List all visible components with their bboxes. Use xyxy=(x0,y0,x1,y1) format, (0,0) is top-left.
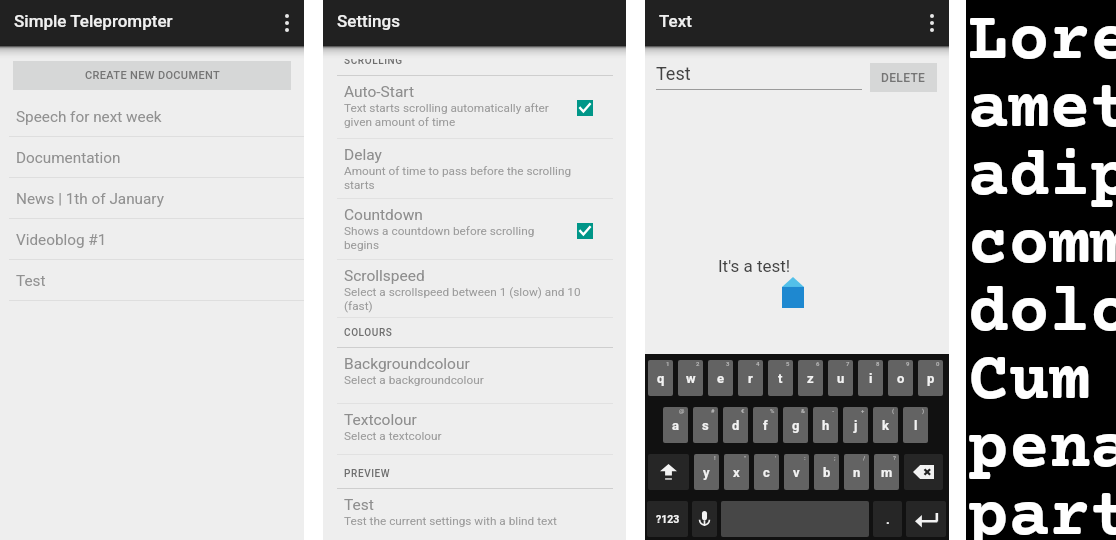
staticText: q xyxy=(657,371,665,386)
button[interactable]: Voice input xyxy=(692,501,717,537)
staticText: s xyxy=(702,418,709,433)
button[interactable]: Backspace xyxy=(904,454,943,490)
staticText: CREATE NEW DOCUMENT xyxy=(85,69,220,82)
button[interactable]: t xyxy=(768,360,793,396)
staticText: ) xyxy=(922,407,925,414)
staticText: p xyxy=(927,371,935,386)
staticText: 4 xyxy=(756,360,760,367)
staticText: Textcolour xyxy=(344,411,417,429)
staticText: News | 1th of January xyxy=(16,190,164,208)
button[interactable]: Shift xyxy=(648,454,689,490)
button[interactable]: r xyxy=(738,360,763,396)
staticText: x xyxy=(733,465,740,480)
staticText: Backgroundcolour xyxy=(344,355,470,373)
button[interactable]: News | 1th of January xyxy=(0,178,304,219)
button[interactable]: More options xyxy=(270,6,304,40)
button[interactable]: More options xyxy=(915,6,949,40)
button[interactable]: d xyxy=(723,407,748,443)
button[interactable]: Videoblog #1 xyxy=(0,219,304,260)
staticText: 2 xyxy=(696,360,700,367)
staticText: + xyxy=(861,407,865,414)
button[interactable]: f xyxy=(753,407,778,443)
button[interactable]: Documentation xyxy=(0,137,304,178)
button[interactable]: k xyxy=(873,407,898,443)
button[interactable]: j xyxy=(843,407,868,443)
staticText: / xyxy=(863,454,866,461)
button[interactable]: Enter xyxy=(906,501,946,537)
button[interactable]: ?123 xyxy=(647,501,688,537)
button[interactable]: z xyxy=(798,360,823,396)
staticText: 8 xyxy=(876,360,880,367)
button[interactable]: CREATE NEW DOCUMENT xyxy=(13,61,291,90)
staticText: Cum sociis natoque xyxy=(968,345,1116,413)
button[interactable]: Speech for next week xyxy=(0,96,304,137)
button[interactable]: . xyxy=(873,501,902,537)
staticText: l xyxy=(914,418,918,433)
staticText: Auto-Start xyxy=(344,83,415,101)
staticText: - xyxy=(832,407,835,414)
button[interactable]: l xyxy=(903,407,928,443)
staticText: 3 xyxy=(726,360,730,367)
staticText: ! xyxy=(714,454,716,461)
staticText: It's a test! xyxy=(718,256,791,276)
staticText: amet, consectetuer xyxy=(968,73,1116,141)
button[interactable]: x xyxy=(724,454,749,490)
staticText: g xyxy=(792,418,800,433)
button[interactable]: m xyxy=(874,454,899,490)
button[interactable]: Textcolour xyxy=(323,404,626,455)
staticText: Text starts scrolling automatically afte… xyxy=(344,101,549,129)
button[interactable]: Delay xyxy=(323,139,626,199)
staticText: ( xyxy=(892,407,895,414)
button[interactable]: Scrollspeed xyxy=(323,260,626,318)
button[interactable]: s xyxy=(693,407,718,443)
staticText: commodo ligula eget xyxy=(968,209,1116,277)
staticText: € xyxy=(741,407,745,414)
staticText: penatibus et magnis dis xyxy=(968,413,1116,481)
button[interactable]: c xyxy=(754,454,779,490)
staticText: y xyxy=(703,465,710,480)
button[interactable]: Countdown xyxy=(323,199,626,260)
staticText: c xyxy=(763,465,770,480)
staticText: n xyxy=(853,465,861,480)
button[interactable]: Test xyxy=(0,260,304,301)
staticText: o xyxy=(897,371,905,386)
button[interactable]: Auto-Start xyxy=(323,76,626,139)
staticText: % xyxy=(770,407,775,414)
staticText: dolor. Aenean massa. xyxy=(968,277,1116,345)
button[interactable]: e xyxy=(708,360,733,396)
button[interactable]: n xyxy=(844,454,869,490)
button[interactable]: DELETE xyxy=(870,63,937,92)
button[interactable]: q xyxy=(648,360,673,396)
button[interactable]: o xyxy=(888,360,913,396)
staticText: v xyxy=(793,465,800,480)
button[interactable]: p xyxy=(918,360,943,396)
staticText: Videoblog #1 xyxy=(16,231,107,249)
button[interactable]: w xyxy=(678,360,703,396)
staticText: e xyxy=(717,371,725,386)
staticText: h xyxy=(822,418,830,433)
staticText: adipiscing elit. Aenean xyxy=(968,141,1116,209)
staticText: 6 xyxy=(816,360,820,367)
button[interactable]: y xyxy=(694,454,719,490)
button[interactable]: g xyxy=(783,407,808,443)
staticText: Amount of time to pass before the scroll… xyxy=(344,164,572,192)
staticText: Settings xyxy=(337,11,400,31)
staticText: Test xyxy=(344,496,374,514)
button[interactable]: i xyxy=(858,360,883,396)
button[interactable]: h xyxy=(813,407,838,443)
button[interactable]: v xyxy=(784,454,809,490)
staticText: j xyxy=(854,418,858,433)
staticText: Speech for next week xyxy=(16,108,162,126)
button[interactable]: a xyxy=(663,407,688,443)
staticText: b xyxy=(823,465,831,480)
button[interactable]: Backgroundcolour xyxy=(323,348,626,404)
staticText: Select a scrollspeed between 1 (slow) an… xyxy=(344,285,581,313)
staticText: Test the current settings with a blind t… xyxy=(344,514,557,528)
staticText: Test xyxy=(16,272,46,290)
button[interactable]: u xyxy=(828,360,853,396)
button[interactable]: b xyxy=(814,454,839,490)
staticText: m xyxy=(881,465,893,480)
staticText: PREVIEW xyxy=(344,468,391,480)
button[interactable]: Test xyxy=(323,489,626,540)
